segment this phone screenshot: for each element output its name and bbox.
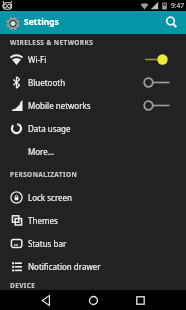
staticText: PERSONALIZATION xyxy=(10,170,78,179)
button[interactable]: Settings xyxy=(0,11,186,34)
button[interactable]: Data usage xyxy=(0,117,186,140)
button[interactable] xyxy=(34,290,59,310)
button[interactable]: Status bar xyxy=(0,232,186,255)
button[interactable] xyxy=(81,290,106,310)
button[interactable] xyxy=(128,290,153,310)
button[interactable]: More... xyxy=(0,140,186,163)
button[interactable] xyxy=(161,12,183,34)
button[interactable]: Lock screen xyxy=(0,186,186,209)
staticText: WIRELESS & NETWORKS xyxy=(10,38,94,47)
staticText: 9:47 xyxy=(171,1,184,10)
staticText: Lock screen xyxy=(28,192,73,203)
button[interactable]: Notification drawer xyxy=(0,255,186,278)
staticText: Wi-Fi xyxy=(28,54,47,65)
staticText: Bluetooth xyxy=(28,77,66,88)
button[interactable]: Themes xyxy=(0,209,186,232)
staticText: Status bar xyxy=(28,238,67,249)
staticText: Themes xyxy=(28,215,58,226)
staticText: Data usage xyxy=(28,123,71,134)
staticText: More... xyxy=(28,146,55,157)
staticText: Mobile networks xyxy=(28,100,91,111)
button[interactable]: Wi-Fi xyxy=(0,48,186,71)
staticText: DEVICE xyxy=(10,281,36,290)
button[interactable]: Bluetooth xyxy=(0,71,186,94)
button[interactable]: Mobile networks xyxy=(0,94,186,117)
staticText: Settings xyxy=(24,16,59,28)
staticText: Notification drawer xyxy=(28,261,101,272)
